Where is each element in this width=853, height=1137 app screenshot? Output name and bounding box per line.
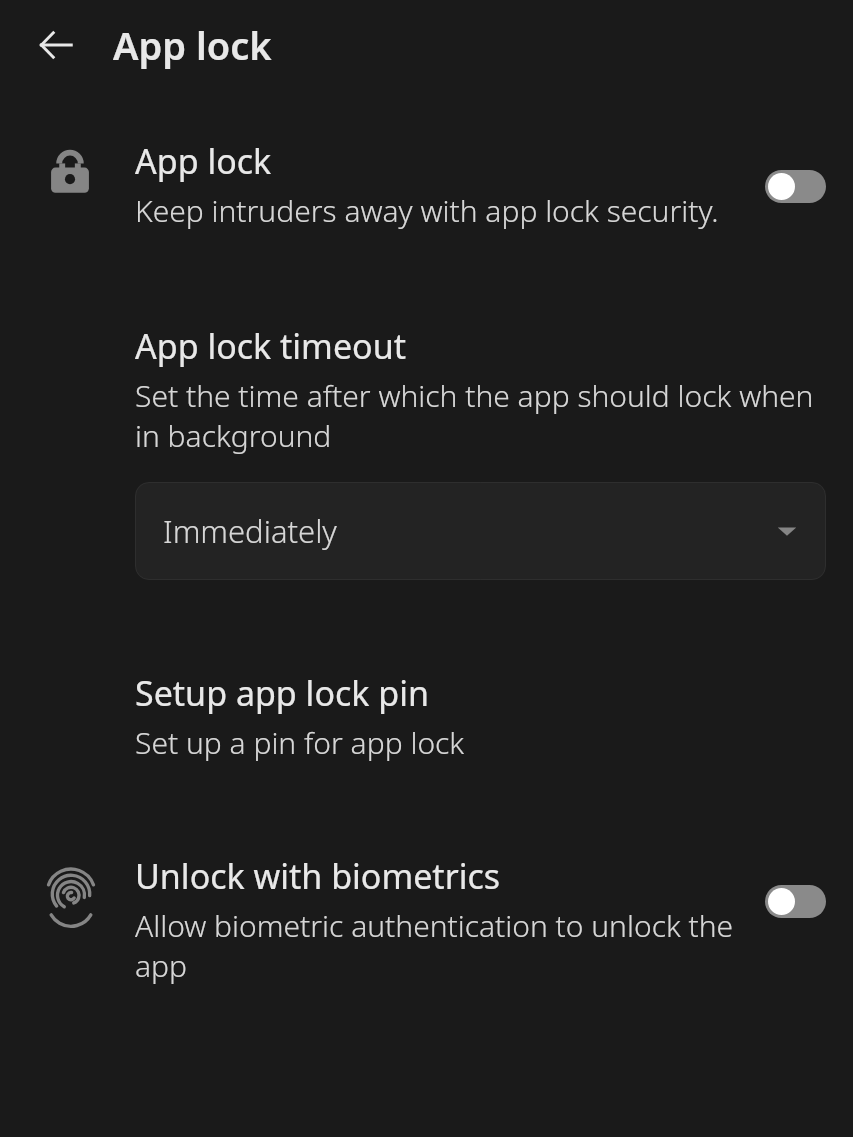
staticText: Keep intruders away with app lock securi…: [135, 190, 719, 231]
button[interactable]: Back: [30, 19, 82, 71]
staticText: App lock timeout: [135, 323, 406, 369]
staticText: Immediately: [163, 510, 776, 552]
staticText: Unlock with biometrics: [135, 853, 501, 899]
staticText: Set the time after which the app should …: [135, 375, 826, 456]
button[interactable]: App lock: [0, 90, 853, 231]
staticText: Allow biometric authentication to unlock…: [135, 905, 751, 986]
staticText: Set up a pin for app lock: [135, 722, 465, 763]
button[interactable]: Unlock with biometrics: [0, 853, 853, 986]
staticText: Setup app lock pin: [135, 670, 429, 716]
staticText: App lock: [113, 19, 272, 71]
button[interactable]: Setup app lock pin: [0, 670, 853, 763]
button[interactable]: Toggle: [765, 885, 826, 918]
staticText: App lock: [135, 138, 272, 184]
button[interactable]: Toggle: [765, 170, 826, 203]
button[interactable]: Immediately: [135, 482, 826, 580]
